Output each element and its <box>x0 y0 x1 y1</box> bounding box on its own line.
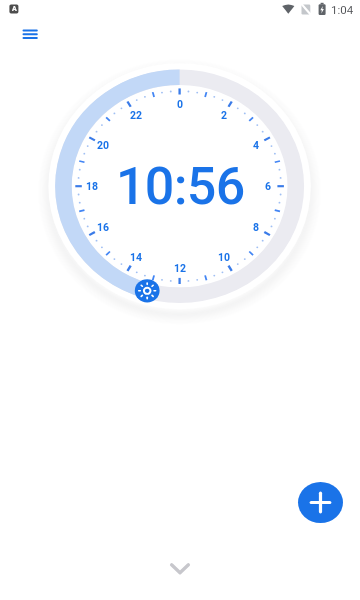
staticText: 14 <box>130 251 143 263</box>
staticText: 1:04 <box>331 3 354 16</box>
staticText: 2 <box>221 109 228 121</box>
staticText: A <box>12 5 17 13</box>
button[interactable] <box>298 482 343 523</box>
staticText: 4 <box>253 139 260 151</box>
staticText: 8 <box>253 221 260 233</box>
staticText: 10:56 <box>116 156 245 217</box>
staticText: 12 <box>174 262 187 274</box>
staticText: 0 <box>177 98 184 110</box>
staticText: 16 <box>97 221 110 233</box>
staticText: 10 <box>218 251 231 263</box>
staticText: 22 <box>130 109 143 121</box>
staticText: 18 <box>86 180 99 192</box>
staticText: 20 <box>97 139 110 151</box>
button[interactable] <box>132 276 163 306</box>
button[interactable] <box>158 554 202 584</box>
staticText: 6 <box>265 180 272 192</box>
button[interactable] <box>8 16 52 56</box>
